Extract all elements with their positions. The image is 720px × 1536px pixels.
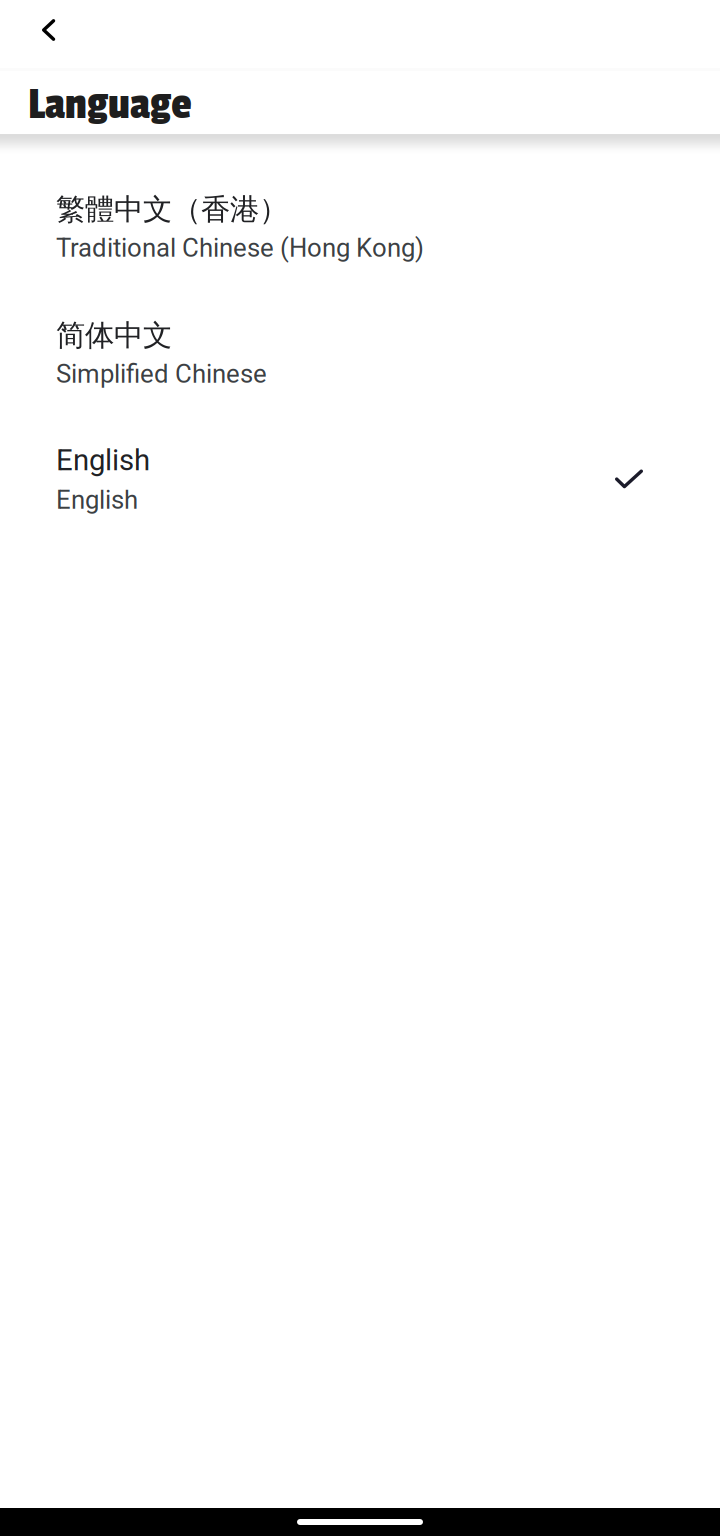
staticText: Traditional Chinese (Hong Kong) <box>56 233 424 263</box>
staticText: Language <box>28 79 192 130</box>
staticText: 繁體中文（香港） <box>56 191 288 228</box>
button[interactable]: Back <box>21 6 76 62</box>
staticText: 简体中文 <box>56 317 172 354</box>
button[interactable]: English <box>0 416 720 542</box>
button[interactable]: 繁體中文（香港） <box>0 164 720 290</box>
staticText: English <box>56 443 150 477</box>
staticText: English <box>56 485 138 515</box>
staticText: Simplified Chinese <box>56 359 267 389</box>
button[interactable]: 简体中文 <box>0 290 720 416</box>
